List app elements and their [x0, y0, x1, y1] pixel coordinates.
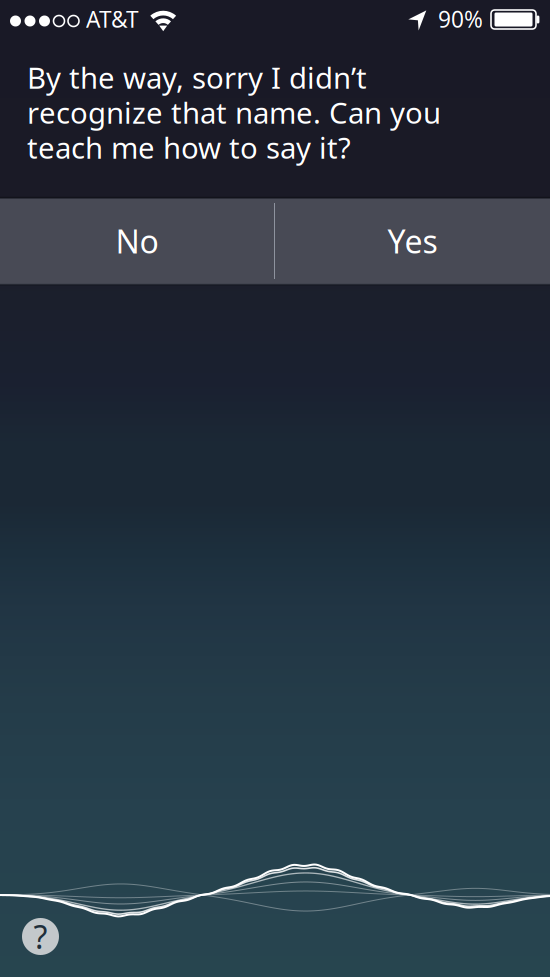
staticText: 90% — [438, 4, 483, 34]
staticText: teach me how to say it? — [27, 128, 351, 167]
staticText: AT&T — [86, 4, 139, 34]
staticText: recognize that name. Can you — [27, 93, 441, 132]
button[interactable]: Help — [22, 918, 59, 955]
staticText: No — [115, 220, 158, 262]
staticText: Yes — [387, 220, 437, 262]
button[interactable]: No — [0, 198, 274, 283]
staticText: ? — [33, 915, 47, 958]
staticText: By the way, sorry I didn’t — [27, 58, 367, 97]
button[interactable]: Yes — [275, 198, 550, 283]
